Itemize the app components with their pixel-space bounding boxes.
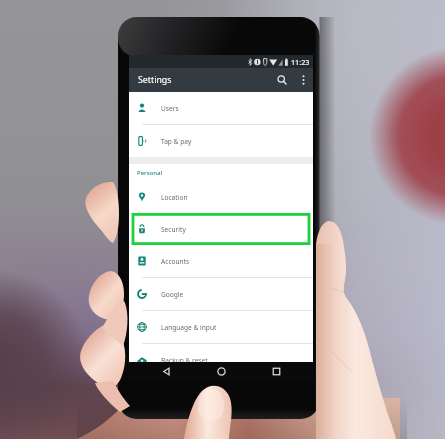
button[interactable]: Google: [129, 278, 313, 310]
staticText: Tap & pay: [161, 137, 192, 146]
staticText: Personal: [137, 169, 163, 177]
button[interactable]: Home: [203, 362, 239, 381]
staticText: Google: [161, 290, 184, 299]
button[interactable]: Search: [271, 68, 293, 92]
button[interactable]: Back: [148, 362, 184, 381]
staticText: Language & input: [161, 323, 217, 332]
button[interactable]: Security: [129, 213, 313, 245]
staticText: Security: [161, 225, 186, 234]
button[interactable]: More options: [293, 68, 313, 92]
button[interactable]: Recents: [258, 362, 294, 381]
button[interactable]: Users: [129, 92, 313, 124]
button[interactable]: Language & input: [129, 311, 313, 343]
staticText: Users: [161, 104, 179, 113]
staticText: Location: [161, 193, 188, 202]
button[interactable]: Tap & pay: [129, 125, 313, 157]
staticText: Backup & reset: [161, 356, 208, 365]
staticText: 11:23: [291, 57, 310, 67]
button[interactable]: Location: [129, 181, 313, 213]
staticText: Settings: [138, 74, 172, 86]
button[interactable]: Backup & reset: [129, 344, 313, 376]
button[interactable]: Accounts: [129, 245, 313, 277]
staticText: Accounts: [161, 257, 190, 266]
